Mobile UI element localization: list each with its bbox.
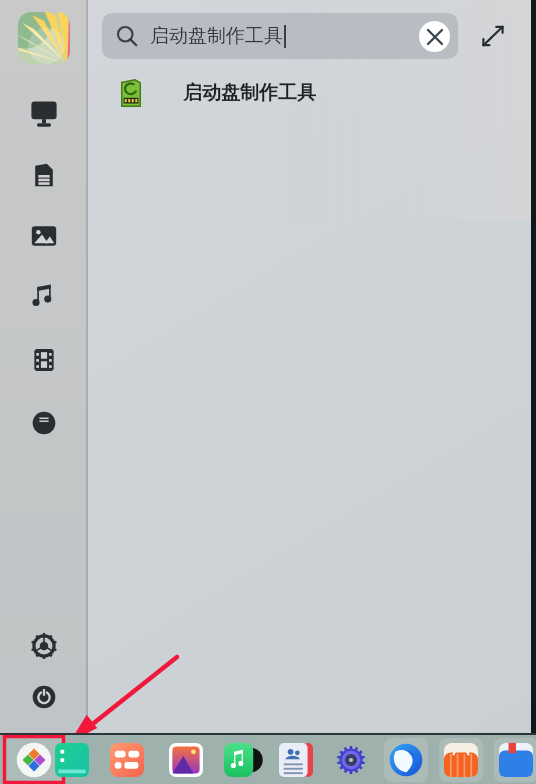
- button[interactable]: App grid: [105, 738, 149, 782]
- button[interactable]: Start menu: [6, 738, 62, 782]
- button[interactable]: 启动盘制作工具: [102, 13, 458, 59]
- button[interactable]: App store: [439, 738, 483, 782]
- button[interactable]: 启动盘制作工具: [88, 71, 536, 115]
- staticText: 启动盘制作工具: [150, 24, 283, 48]
- button[interactable]: Terminal: [50, 738, 94, 782]
- button[interactable]: Clear search: [419, 21, 450, 52]
- button[interactable]: Documents: [23, 154, 65, 196]
- button[interactable]: Videos: [23, 339, 65, 381]
- button[interactable]: Power: [23, 676, 65, 718]
- button[interactable]: Pictures: [23, 215, 65, 257]
- button[interactable]: Computer: [23, 91, 65, 133]
- button[interactable]: Expand: [476, 19, 510, 53]
- button[interactable]: Downloads: [23, 402, 65, 444]
- button[interactable]: Files: [494, 738, 536, 782]
- button[interactable]: Settings: [23, 625, 65, 667]
- button[interactable]: Music: [23, 276, 65, 318]
- button[interactable]: User avatar: [18, 12, 70, 64]
- staticText: 启动盘制作工具: [183, 81, 316, 105]
- button[interactable]: System settings: [329, 738, 373, 782]
- button[interactable]: Photos: [164, 738, 208, 782]
- button[interactable]: Browser: [384, 738, 428, 782]
- button[interactable]: Contacts: [274, 738, 318, 782]
- button[interactable]: Music: [219, 738, 263, 782]
